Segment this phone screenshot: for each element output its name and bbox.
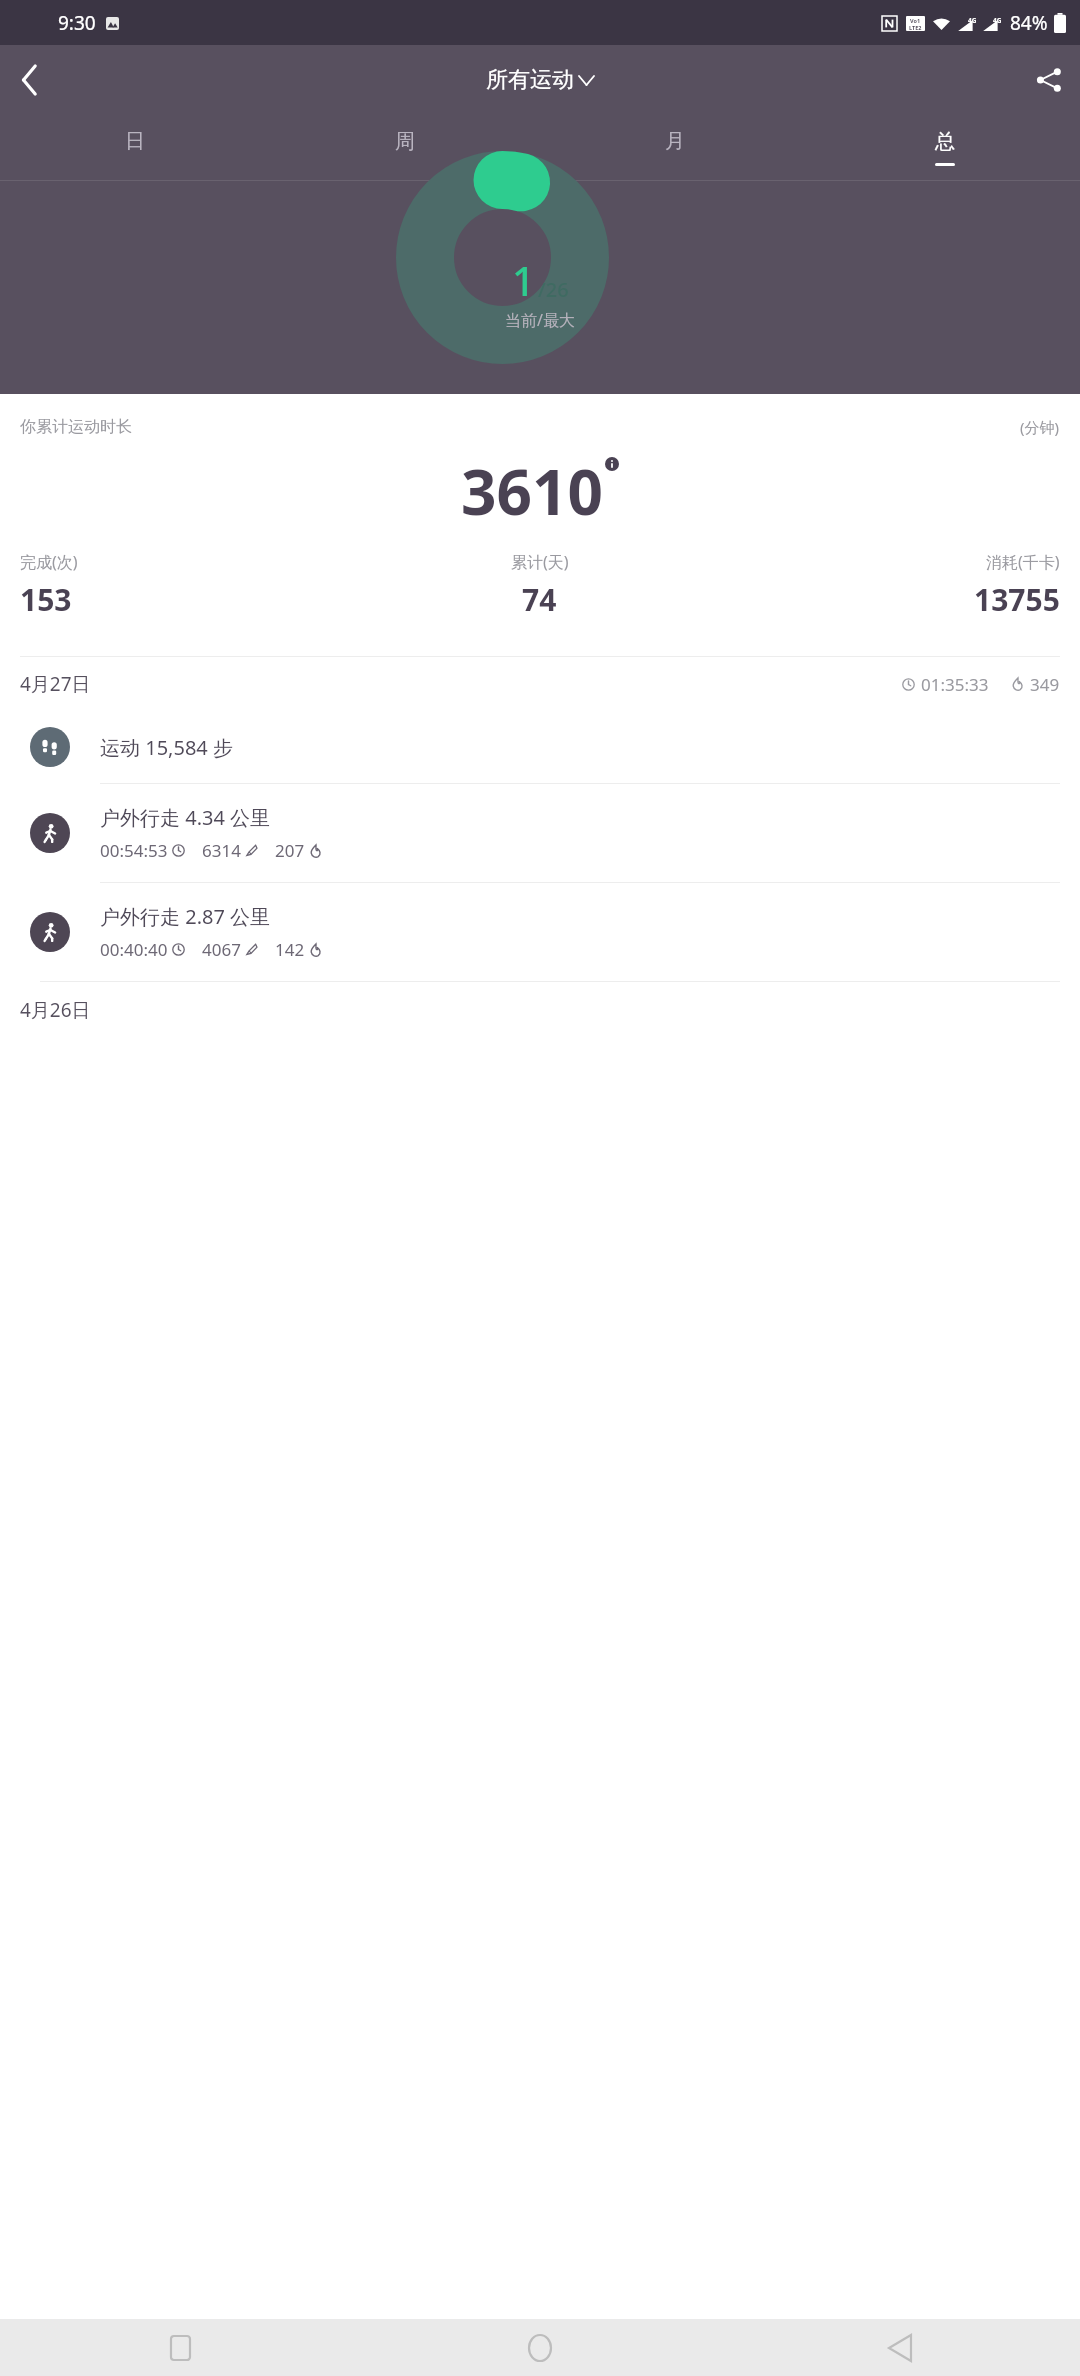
staticText: 你累计运动时长 xyxy=(20,417,132,437)
button[interactable]: 运动 15,584 步 xyxy=(0,711,1080,783)
button[interactable]: 月 xyxy=(540,115,810,180)
staticText: 月 xyxy=(665,129,685,154)
staticText: 累计(天) xyxy=(511,551,569,573)
staticText: 207 xyxy=(275,839,305,862)
button[interactable]: 日 xyxy=(0,115,270,180)
staticText: 完成(次) xyxy=(20,551,78,573)
staticText: 消耗(千卡) xyxy=(986,551,1060,573)
staticText: 01:35:33 xyxy=(921,673,989,696)
button[interactable]: Share xyxy=(1018,49,1080,111)
button[interactable]: Back xyxy=(720,2319,1080,2376)
staticText: 6314 xyxy=(202,839,241,862)
button[interactable]: 所有运动 xyxy=(478,60,602,100)
staticText: 当前/最大 xyxy=(505,309,575,331)
staticText: 74 xyxy=(522,579,557,620)
staticText: Vo1 xyxy=(910,17,921,24)
button[interactable]: 户外行走 4.34 公里 xyxy=(0,784,1080,882)
staticText: 户外行走 4.34 公里 xyxy=(100,804,271,831)
staticText: 00:40:40 xyxy=(100,938,168,961)
staticText: 9:30 xyxy=(58,10,96,36)
staticText: 4G xyxy=(968,16,977,25)
staticText: 1 xyxy=(512,253,535,307)
staticText: 153 xyxy=(20,579,72,620)
staticText: 运动 15,584 步 xyxy=(100,734,233,761)
staticText: 4月27日 xyxy=(20,671,91,697)
button[interactable]: Home xyxy=(360,2319,720,2376)
button[interactable]: 总 xyxy=(810,115,1080,180)
staticText: 户外行走 2.87 公里 xyxy=(100,903,271,930)
staticText: 142 xyxy=(275,938,305,961)
button[interactable]: Back xyxy=(0,51,58,109)
staticText: 4G xyxy=(993,16,1002,25)
button[interactable]: 周 xyxy=(270,115,540,180)
button[interactable]: 户外行走 2.87 公里 xyxy=(0,883,1080,981)
staticText: 3610 xyxy=(461,449,603,533)
staticText: 349 xyxy=(1030,673,1060,696)
staticText: 84% xyxy=(1010,10,1048,36)
staticText: /26 xyxy=(538,276,569,303)
staticText: LTE2 xyxy=(909,24,922,31)
staticText: 所有运动 xyxy=(486,66,574,94)
button[interactable]: Recents xyxy=(0,2319,360,2376)
staticText: 4月26日 xyxy=(20,997,91,1023)
staticText: 00:54:53 xyxy=(100,839,168,862)
staticText: 日 xyxy=(125,129,145,154)
staticText: 4067 xyxy=(202,938,241,961)
staticText: (分钟) xyxy=(1020,417,1060,437)
staticText: 13755 xyxy=(974,579,1060,620)
staticText: 总 xyxy=(935,129,955,154)
staticText: 周 xyxy=(395,129,415,154)
